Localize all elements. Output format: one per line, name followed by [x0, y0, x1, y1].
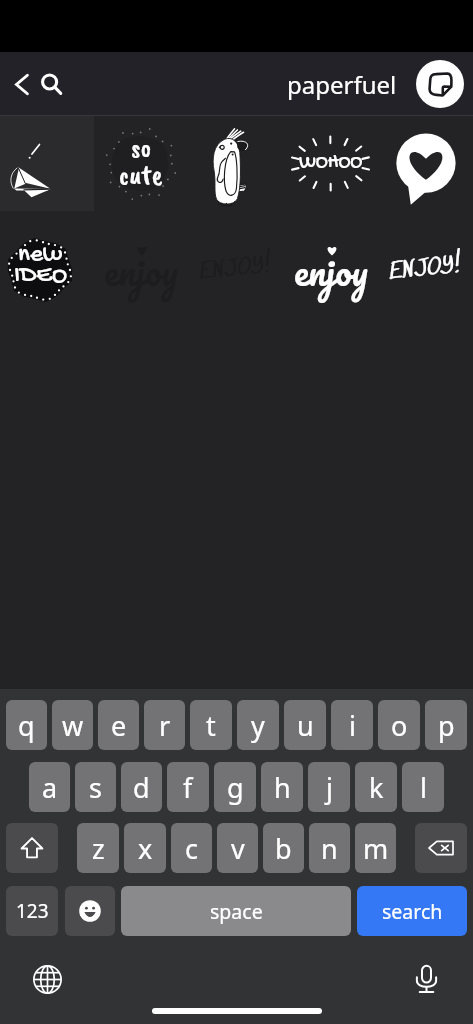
staticText: new: [18, 241, 63, 270]
button[interactable]: e: [98, 700, 139, 750]
button[interactable]: v: [217, 823, 258, 873]
button[interactable]: enjoy: [283, 211, 378, 306]
button[interactable]: WOHOO: [283, 116, 378, 211]
staticText: p: [438, 707, 455, 744]
staticText: IDEO: [14, 262, 67, 291]
button[interactable]: [378, 116, 473, 211]
button[interactable]: ENJOY!: [378, 211, 473, 306]
staticText: g: [227, 769, 244, 806]
staticText: search: [382, 898, 443, 925]
staticText: k: [369, 769, 384, 806]
button[interactable]: p: [425, 700, 467, 750]
button[interactable]: new: [0, 211, 94, 306]
staticText: WOHOO: [299, 152, 363, 176]
button[interactable]: r: [144, 700, 185, 750]
button[interactable]: y: [237, 700, 279, 750]
staticText: s: [89, 769, 102, 806]
button[interactable]: Search: [36, 69, 66, 99]
button[interactable]: b: [263, 823, 304, 873]
button[interactable]: [188, 116, 283, 211]
staticText: e: [111, 707, 127, 744]
button[interactable]: d: [121, 762, 162, 812]
button[interactable]: n: [309, 823, 350, 873]
staticText: r: [159, 707, 171, 744]
staticText: cute: [119, 157, 163, 192]
button[interactable]: Back: [6, 69, 36, 99]
button[interactable]: h: [261, 762, 303, 812]
staticText: m: [363, 830, 389, 867]
staticText: d: [133, 769, 150, 806]
staticText: so: [131, 130, 152, 165]
button[interactable]: c: [171, 823, 212, 873]
button[interactable]: s: [75, 762, 116, 812]
button[interactable]: Backspace: [415, 823, 467, 873]
button[interactable]: Numbers: [6, 886, 58, 936]
staticText: i: [349, 707, 356, 744]
staticText: z: [92, 830, 105, 867]
staticText: t: [206, 707, 216, 744]
button[interactable]: Sticker pack: [416, 60, 464, 108]
staticText: h: [274, 769, 291, 806]
button[interactable]: k: [355, 762, 397, 812]
staticText: enjoy: [294, 239, 368, 302]
staticText: j: [326, 769, 333, 806]
staticText: space: [210, 898, 263, 925]
staticText: l: [420, 769, 427, 806]
staticText: v: [231, 830, 245, 867]
staticText: a: [42, 769, 58, 806]
button[interactable]: g: [214, 762, 256, 812]
staticText: w: [62, 707, 84, 744]
button[interactable]: [0, 116, 94, 211]
button[interactable]: u: [284, 700, 326, 750]
staticText: 123: [16, 898, 49, 924]
button[interactable]: z: [77, 823, 119, 873]
staticText: u: [297, 707, 314, 744]
button[interactable]: Shift: [6, 823, 58, 873]
staticText: ENJOY!: [388, 251, 463, 286]
staticText: b: [275, 830, 292, 867]
button[interactable]: o: [378, 700, 420, 750]
staticText: paperfuel: [287, 68, 397, 101]
staticText: y: [251, 707, 265, 744]
staticText: n: [321, 830, 338, 867]
button[interactable]: w: [52, 700, 93, 750]
button[interactable]: x: [124, 823, 166, 873]
button[interactable]: Emoji: [65, 886, 115, 936]
button[interactable]: so: [94, 116, 188, 211]
button[interactable]: t: [190, 700, 232, 750]
button[interactable]: q: [6, 700, 47, 750]
button[interactable]: Change keyboard: [29, 961, 65, 997]
button[interactable]: space: [121, 886, 351, 936]
button[interactable]: a: [29, 762, 70, 812]
staticText: q: [18, 707, 35, 744]
button[interactable]: f: [167, 762, 209, 812]
button[interactable]: i: [331, 700, 373, 750]
staticText: c: [185, 830, 198, 867]
button[interactable]: m: [355, 823, 396, 873]
staticText: o: [391, 707, 408, 744]
staticText: f: [183, 769, 193, 806]
staticText: x: [138, 830, 153, 867]
button[interactable]: search: [357, 886, 467, 936]
button[interactable]: Voice input: [408, 961, 444, 997]
button[interactable]: j: [308, 762, 350, 812]
button[interactable]: l: [402, 762, 444, 812]
